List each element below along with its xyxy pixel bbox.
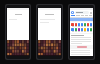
button[interactable] [81,28,83,32]
button[interactable] [5,4,31,60]
button[interactable] [71,23,74,27]
button[interactable] [90,23,92,27]
button[interactable] [78,28,80,32]
button[interactable] [87,28,89,32]
button[interactable] [84,23,86,27]
button[interactable] [87,23,89,27]
other: Google [71,11,74,14]
button[interactable] [77,46,87,48]
button[interactable] [36,4,63,60]
button[interactable] [90,28,92,32]
button[interactable] [78,23,80,27]
button[interactable] [84,28,86,32]
button[interactable] [75,28,77,32]
button[interactable]: Google [68,4,95,60]
button[interactable] [75,23,77,27]
button[interactable] [81,23,83,27]
button[interactable] [71,28,74,32]
button[interactable]: Google [70,10,93,15]
